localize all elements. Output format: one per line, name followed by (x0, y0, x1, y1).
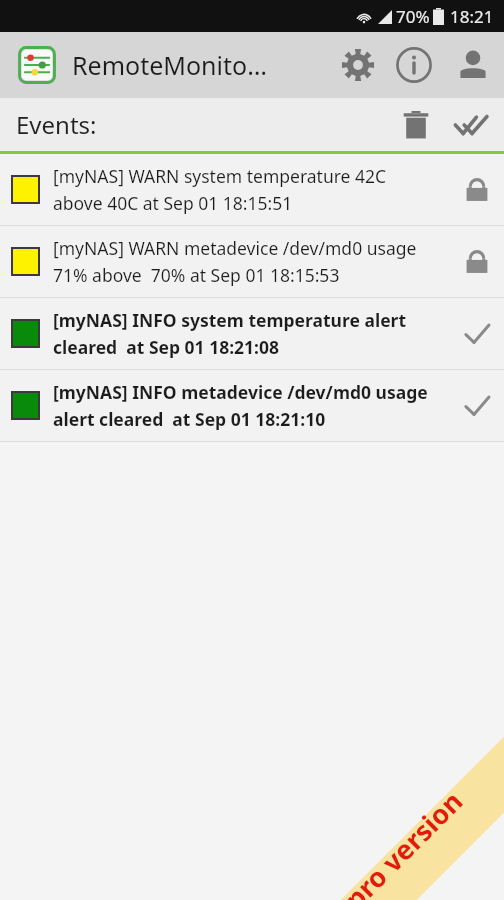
button[interactable]: [myNAS] INFO system temperature alert (0, 298, 504, 369)
other: Locked (450, 235, 504, 289)
other: Locked (450, 163, 504, 217)
button[interactable]: Account (442, 34, 504, 96)
staticText: above 40C at Sep 01 18:15:51 (53, 191, 293, 215)
staticText: [myNAS] WARN metadevice /dev/md0 usage (53, 236, 417, 260)
other: Acknowledged (450, 307, 504, 361)
button[interactable]: [myNAS] WARN metadevice /dev/md0 usage (0, 226, 504, 297)
staticText: 71% above 70% at Sep 01 18:15:53 (53, 263, 340, 287)
staticText: RemoteMonito… (72, 48, 267, 82)
staticText: [myNAS] WARN system temperature 42C (53, 164, 387, 188)
button[interactable]: App icon (16, 44, 58, 86)
button[interactable]: Mark all read (442, 98, 500, 151)
button[interactable]: [myNAS] INFO metadevice /dev/md0 usage (0, 370, 504, 441)
staticText: Events: (16, 108, 97, 141)
button[interactable]: Settings (330, 37, 386, 93)
button[interactable]: Info (386, 37, 442, 93)
staticText: 18:21 (450, 5, 494, 28)
staticText: 70% (396, 5, 430, 28)
staticText: pro version (336, 782, 471, 900)
button[interactable]: Delete all events (390, 99, 442, 151)
staticText: [myNAS] INFO system temperature alert (53, 308, 406, 332)
staticText: [myNAS] INFO metadevice /dev/md0 usage (53, 380, 428, 404)
other: Acknowledged (450, 379, 504, 433)
button[interactable]: [myNAS] WARN system temperature 42C (0, 154, 504, 225)
staticText: alert cleared at Sep 01 18:21:10 (53, 407, 326, 431)
staticText: cleared at Sep 01 18:21:08 (53, 335, 280, 359)
